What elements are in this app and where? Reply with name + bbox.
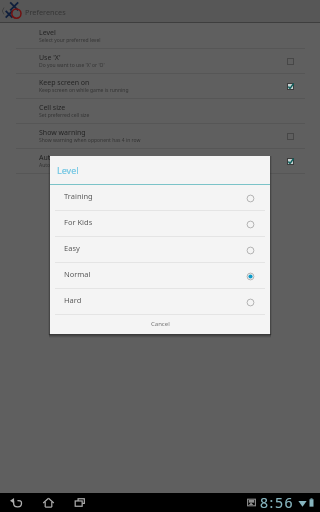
button[interactable]: Home — [38, 493, 58, 512]
button[interactable]: Cell size — [0, 99, 320, 124]
button[interactable]: Training — [50, 185, 270, 211]
button[interactable]: Easy — [50, 237, 270, 263]
staticText: Auto save — [39, 153, 72, 163]
staticText: For Kids — [64, 217, 93, 227]
staticText: Normal — [64, 269, 91, 279]
button[interactable]: Show warning — [0, 124, 320, 149]
button[interactable]: Cancel — [50, 315, 270, 334]
staticText: Level — [39, 28, 56, 38]
staticText: Hard — [64, 295, 82, 305]
staticText: Do you want to use 'X' or 'O' — [39, 62, 105, 69]
button[interactable]: Level — [0, 24, 320, 49]
button[interactable]: Normal — [50, 263, 270, 289]
staticText: Cell size — [39, 103, 66, 113]
staticText: Level — [57, 164, 79, 176]
staticText: Training — [64, 191, 93, 201]
button[interactable]: Use 'X' — [0, 49, 320, 74]
button[interactable]: Recent apps — [70, 493, 90, 512]
button[interactable]: Hard — [50, 289, 270, 315]
staticText: Show warning — [39, 128, 86, 138]
button[interactable]: Back — [6, 493, 26, 512]
staticText: Set preferred cell size — [39, 112, 90, 119]
staticText: Easy — [64, 243, 80, 253]
staticText: Use 'X' — [39, 53, 61, 63]
staticText: Keep screen on while game is running — [39, 87, 129, 94]
staticText: Preferences — [25, 7, 66, 17]
staticText: Select your preferred level — [39, 37, 101, 44]
staticText: Cancel — [151, 320, 170, 328]
button[interactable]: Auto save — [0, 149, 320, 174]
staticText: Auto save game position — [39, 162, 97, 169]
button[interactable]: For Kids — [50, 211, 270, 237]
button[interactable]: Navigate up — [0, 0, 320, 23]
button[interactable]: Keep screen on — [0, 74, 320, 99]
staticText: 8:56 — [260, 493, 295, 512]
staticText: Show warning when opponent has 4 in row — [39, 137, 141, 144]
staticText: Keep screen on — [39, 78, 90, 88]
